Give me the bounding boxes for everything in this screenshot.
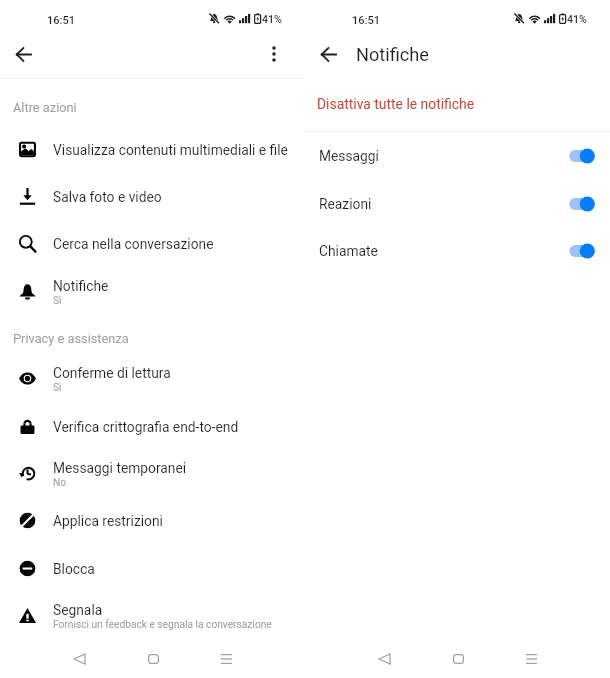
button[interactable]: Cerca nella conversazione: [0, 220, 305, 267]
button[interactable]: Back: [65, 645, 93, 673]
staticText: 16:51: [47, 14, 75, 27]
button[interactable]: Back: [312, 38, 344, 70]
button[interactable]: Chiamate: [305, 227, 610, 274]
staticText: Verifica crittografia end-to-end: [53, 419, 239, 435]
button[interactable]: Messaggi temporanei: [0, 450, 305, 497]
button[interactable]: More options: [258, 38, 290, 70]
staticText: Notifiche: [356, 44, 429, 65]
button[interactable]: Blocca: [0, 545, 305, 592]
staticText: Sì: [53, 295, 62, 307]
staticText: Messaggi: [319, 148, 379, 164]
staticText: Visualizza contenuti multimediali e file: [53, 142, 288, 158]
staticText: Privacy e assistenza: [13, 331, 129, 346]
staticText: Blocca: [53, 561, 95, 577]
button[interactable]: Home: [139, 645, 167, 673]
staticText: Notifiche: [53, 278, 109, 294]
staticText: Sì: [53, 382, 62, 394]
staticText: Chiamate: [319, 243, 378, 259]
staticText: Disattiva tutte le notifiche: [317, 96, 475, 112]
button[interactable]: Disattiva tutte le notifiche: [305, 80, 610, 127]
button[interactable]: Conferme di lettura: [0, 355, 305, 402]
staticText: Conferme di lettura: [53, 365, 171, 381]
staticText: Cerca nella conversazione: [53, 236, 214, 252]
staticText: 41%: [262, 13, 282, 25]
staticText: Altre azioni: [13, 100, 77, 115]
button[interactable]: Segnala: [0, 592, 305, 639]
button[interactable]: Recent apps: [517, 645, 545, 673]
button[interactable]: Verifica crittografia end-to-end: [0, 403, 305, 450]
button[interactable]: Back: [370, 645, 398, 673]
button[interactable]: Messaggi: [305, 132, 610, 179]
button[interactable]: Reazioni: [305, 180, 610, 227]
staticText: No: [53, 477, 67, 489]
staticText: Messaggi temporanei: [53, 460, 187, 476]
staticText: 16:51: [352, 14, 380, 27]
staticText: Segnala: [53, 602, 103, 618]
button[interactable]: Salva foto e video: [0, 173, 305, 220]
button[interactable]: Applica restrizioni: [0, 497, 305, 544]
button[interactable]: Home: [444, 645, 472, 673]
button[interactable]: Notifiche: [0, 268, 305, 315]
button[interactable]: Recent apps: [212, 645, 240, 673]
staticText: Fornisci un feedback e segnala la conver…: [53, 619, 272, 631]
staticText: Applica restrizioni: [53, 513, 163, 529]
button[interactable]: Back: [7, 38, 39, 70]
staticText: Reazioni: [319, 196, 372, 212]
button[interactable]: Visualizza contenuti multimediali e file: [0, 126, 305, 173]
staticText: 41%: [567, 13, 587, 25]
staticText: Salva foto e video: [53, 189, 162, 205]
